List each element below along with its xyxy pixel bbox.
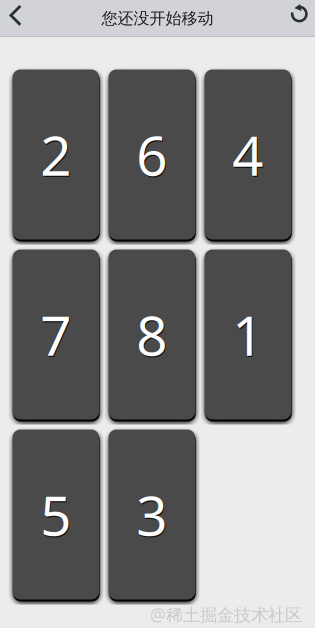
- button[interactable]: 3: [108, 429, 195, 599]
- staticText: 5: [41, 480, 72, 552]
- staticText: 3: [137, 480, 168, 552]
- staticText: 8: [137, 300, 168, 372]
- staticText: 您还没开始移动: [101, 9, 213, 28]
- button[interactable]: 5: [12, 429, 99, 599]
- staticText: 7: [40, 298, 71, 371]
- staticText: 4: [233, 120, 264, 192]
- staticText: 2: [40, 118, 71, 191]
- staticText: 1: [232, 298, 263, 371]
- staticText: 5: [40, 478, 71, 551]
- button[interactable]: 4: [204, 69, 291, 239]
- staticText: 8: [136, 298, 167, 371]
- staticText: 1: [233, 300, 264, 372]
- staticText: 7: [41, 300, 72, 372]
- staticText: 6: [136, 118, 167, 191]
- button[interactable]: 8: [108, 249, 195, 419]
- button[interactable]: 1: [204, 249, 291, 419]
- button[interactable]: 7: [12, 249, 99, 419]
- button[interactable]: 2: [12, 69, 99, 239]
- button[interactable]: 6: [108, 69, 195, 239]
- staticText: 6: [137, 120, 168, 192]
- staticText: @稀土掘金技术社区: [150, 603, 302, 626]
- staticText: 2: [41, 120, 72, 192]
- button[interactable]: Restart: [273, 0, 315, 37]
- button[interactable]: Back: [0, 0, 42, 37]
- staticText: 4: [232, 118, 263, 191]
- staticText: 3: [136, 478, 167, 551]
